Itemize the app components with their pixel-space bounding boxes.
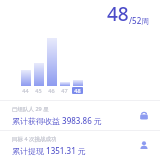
other: Earnings detail — [138, 110, 150, 122]
staticText: 48 — [107, 1, 129, 27]
other: Withdraw detail — [138, 140, 150, 152]
staticText: 46 — [48, 87, 55, 94]
staticText: 44 — [22, 87, 29, 94]
staticText: 48 — [74, 87, 81, 94]
button[interactable]: 目标 4 次挑战成功 — [0, 131, 160, 160]
button[interactable]: 已组队人 29 星 — [0, 101, 160, 130]
staticText: 47 — [61, 87, 68, 94]
staticText: /52周 — [129, 15, 150, 26]
staticText: 已组队人 29 星 — [12, 105, 49, 113]
staticText: 累计提现 1351.31 元 — [12, 145, 86, 156]
staticText: 目标 4 次挑战成功 — [12, 135, 57, 143]
staticText: 45 — [35, 87, 42, 94]
staticText: 累计获得收益 3983.86 元 — [12, 115, 102, 126]
